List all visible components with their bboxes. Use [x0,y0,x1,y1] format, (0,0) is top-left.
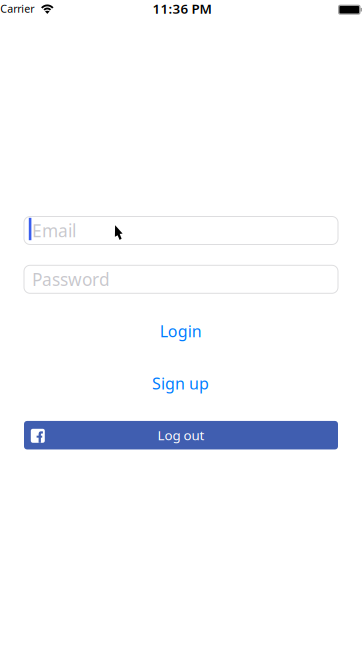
button[interactable]: Log out [24,421,338,449]
button[interactable]: Email [24,216,338,244]
staticText: Log out [157,426,204,444]
button[interactable]: Sign up [152,373,209,394]
staticText: Sign up [152,373,209,394]
staticText: Login [160,320,202,342]
button[interactable]: Password [24,265,338,293]
staticText: 11:36 PM [152,0,211,17]
staticText: Email [32,219,76,242]
staticText: Carrier [0,1,34,16]
button[interactable]: Login [160,320,202,342]
staticText: Password [32,268,110,291]
